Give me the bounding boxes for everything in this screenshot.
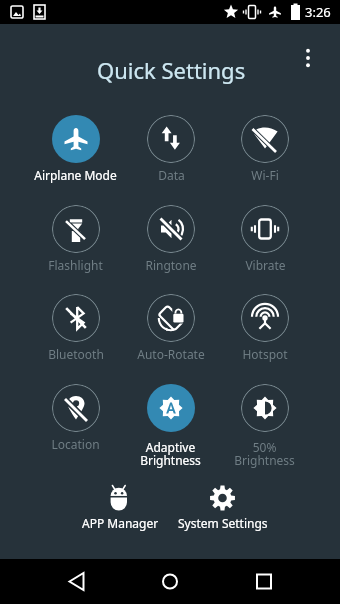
staticText: Ringtone <box>145 257 197 273</box>
button[interactable]: 50% Brightness <box>217 384 312 472</box>
staticText: Auto-Rotate <box>137 346 205 362</box>
staticText: Vibrate <box>245 257 286 273</box>
button[interactable]: Bluetooth <box>28 294 123 382</box>
staticText: Quick Settings <box>97 55 246 85</box>
staticText: Hotspot <box>242 346 288 362</box>
button[interactable]: Data <box>123 115 218 203</box>
staticText: Bluetooth <box>48 346 104 362</box>
button[interactable]: Recents <box>240 559 288 604</box>
button[interactable]: Vibrate <box>217 205 312 293</box>
staticText: Location <box>51 436 100 452</box>
button[interactable]: Hotspot <box>217 294 312 382</box>
button[interactable]: Back <box>53 559 101 604</box>
button[interactable]: Home <box>146 559 194 604</box>
button[interactable]: APP Manager <box>70 484 170 532</box>
staticText: Airplane Mode <box>34 167 117 183</box>
button[interactable]: Ringtone <box>123 205 218 293</box>
button[interactable]: Auto-Rotate <box>123 294 218 382</box>
staticText: Data <box>158 167 185 183</box>
staticText: 3:26 <box>305 3 331 21</box>
staticText: Flashlight <box>48 257 103 273</box>
button[interactable]: Wi-Fi <box>217 115 312 203</box>
staticText: System Settings <box>178 515 268 531</box>
button[interactable]: System Settings <box>173 484 273 532</box>
button[interactable]: Adaptive Brightness <box>123 384 218 472</box>
staticText: Wi-Fi <box>251 167 279 183</box>
staticText: APP Manager <box>82 515 159 531</box>
button[interactable]: Flashlight <box>28 205 123 293</box>
staticText: 50% Brightness <box>234 439 295 469</box>
button[interactable]: Airplane Mode <box>28 115 123 203</box>
staticText: Adaptive Brightness <box>140 439 201 469</box>
button[interactable]: More options <box>290 38 326 74</box>
button[interactable]: Location <box>28 384 123 472</box>
